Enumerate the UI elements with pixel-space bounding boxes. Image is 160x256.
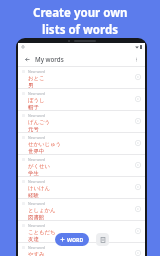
- staticText: My words: [35, 55, 64, 63]
- button[interactable]: Play audio: [134, 73, 141, 80]
- button[interactable]: Play audio: [134, 205, 141, 212]
- staticText: 元号: [28, 126, 39, 132]
- staticText: New word: [28, 223, 46, 228]
- button[interactable]: New word: [18, 243, 145, 256]
- button[interactable]: Play audio: [134, 139, 141, 146]
- staticText: せかいじゅう: [28, 141, 62, 148]
- button[interactable]: New word: [18, 133, 145, 154]
- button[interactable]: WORD: [55, 233, 89, 246]
- staticText: 帽子: [28, 104, 39, 110]
- staticText: こともだち: [28, 229, 56, 236]
- staticText: 学生: [28, 170, 39, 176]
- button[interactable]: Play audio: [134, 227, 141, 234]
- staticText: New word: [28, 157, 46, 162]
- button[interactable]: New word: [18, 89, 145, 110]
- staticText: New word: [28, 69, 46, 74]
- button[interactable]: New word: [18, 111, 145, 132]
- staticText: がくせい: [28, 163, 51, 170]
- staticText: 友達: [28, 236, 39, 242]
- staticText: げんごう: [28, 119, 51, 126]
- staticText: New word: [28, 113, 46, 118]
- staticText: 図書館: [28, 214, 45, 220]
- staticText: 男: [28, 82, 34, 88]
- staticText: New word: [28, 179, 46, 184]
- staticText: ぼうし: [28, 97, 45, 104]
- button[interactable]: Back: [22, 54, 32, 64]
- button[interactable]: More options: [131, 54, 141, 64]
- staticText: 経験: [28, 192, 39, 198]
- button[interactable]: Play audio: [134, 95, 141, 102]
- staticText: としょかん: [28, 207, 56, 214]
- button[interactable]: Play audio: [134, 183, 141, 190]
- staticText: けいけん: [28, 185, 51, 192]
- button[interactable]: New word: [18, 177, 145, 198]
- staticText: New word: [28, 245, 46, 250]
- button[interactable]: Import from file: [96, 233, 109, 246]
- button[interactable]: New word: [18, 199, 145, 220]
- staticText: New word: [28, 135, 46, 140]
- button[interactable]: Play audio: [134, 249, 141, 256]
- button[interactable]: Play audio: [134, 161, 141, 168]
- staticText: やすみ: [28, 251, 45, 256]
- button[interactable]: Play audio: [134, 117, 141, 124]
- staticText: New word: [28, 201, 46, 206]
- staticText: 世界中: [28, 148, 45, 154]
- button[interactable]: New word: [18, 67, 145, 88]
- staticText: Create your own: [33, 5, 128, 21]
- staticText: おとこ: [28, 75, 45, 82]
- staticText: WORD: [67, 236, 84, 243]
- staticText: New word: [28, 91, 46, 96]
- button[interactable]: New word: [18, 221, 145, 242]
- button[interactable]: New word: [18, 155, 145, 176]
- staticText: lists of words: [42, 22, 119, 38]
